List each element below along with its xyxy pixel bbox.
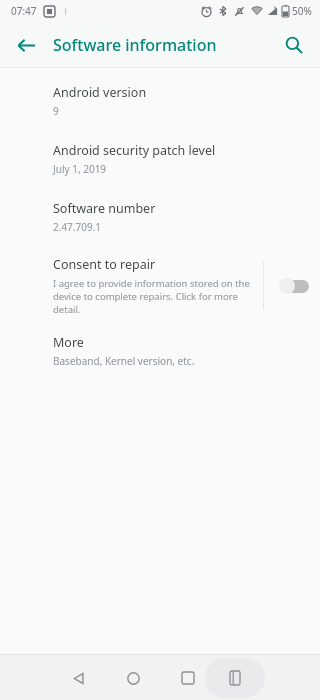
staticText: Android security patch level (53, 142, 216, 159)
button[interactable]: Back (58, 658, 98, 698)
button[interactable]: Search (274, 25, 314, 65)
staticText: 07:47 (11, 4, 37, 18)
staticText: July 1, 2019 (53, 162, 107, 176)
staticText: Consent to repair (53, 256, 156, 273)
button[interactable]: Screenshot (205, 658, 265, 698)
staticText: Software information (53, 34, 217, 56)
button[interactable]: Home (113, 658, 153, 698)
button[interactable]: Recent apps (168, 658, 208, 698)
button[interactable]: Consent to repair (0, 256, 320, 316)
staticText: Baseband, Kernel version, etc. (53, 354, 195, 368)
staticText: 9 (53, 104, 59, 118)
staticText: 50% (292, 4, 312, 18)
button[interactable]: Android security patch level (0, 140, 320, 178)
button[interactable]: Back (6, 25, 46, 65)
button[interactable]: Software number (0, 198, 320, 236)
staticText: Android version (53, 84, 147, 101)
staticText: I agree to provide information stored on… (53, 277, 255, 316)
button[interactable]: Consent to repair toggle (264, 262, 320, 310)
staticText: 2.47.709.1 (53, 220, 102, 234)
staticText: Software number (53, 200, 156, 217)
staticText: More (53, 334, 84, 351)
button[interactable]: More (0, 332, 320, 370)
button[interactable]: Android version (0, 82, 320, 120)
